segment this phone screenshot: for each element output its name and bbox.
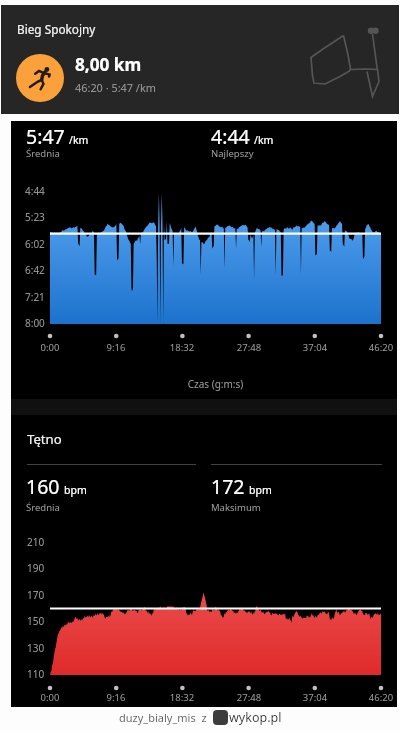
staticText: 18:32 [158,691,206,704]
staticText: /km [69,133,89,147]
staticText: Bieg Spokojny [17,21,96,37]
staticText: 37:04 [291,341,339,354]
staticText: 27:48 [225,341,273,354]
staticText: 170 [27,588,45,602]
staticText: bpm [249,483,272,497]
staticText: 7:21 [25,290,45,304]
staticText: 210 [27,535,45,549]
staticText: 4:44 [25,184,45,198]
staticText: 0:00 [26,341,74,354]
staticText: Tętno [27,430,62,448]
staticText: 46:20 [357,691,400,704]
staticText: 46:20 · 5:47 /km [75,80,156,95]
staticText: 190 [27,561,45,575]
staticText: 110 [27,667,45,681]
staticText: 46:20 [357,341,400,354]
staticText: 0:00 [26,691,74,704]
button[interactable]: Bieg Spokojny [1,5,399,114]
staticText: 172 [211,473,245,500]
staticText: 5:47 [26,123,65,150]
staticText: wykop.pl [229,709,282,726]
staticText: 27:48 [225,691,273,704]
staticText: 130 [27,641,45,655]
staticText: 6:42 [25,263,45,277]
staticText: Czas (g:m:s) [50,377,381,391]
staticText: 37:04 [291,691,339,704]
staticText: /km [254,133,274,147]
staticText: 5:23 [25,210,45,224]
staticText: Średnia [26,147,60,160]
staticText: bpm [64,483,87,497]
staticText: 9:16 [92,691,140,704]
staticText: 8,00 km [75,53,142,76]
other: Route map [307,21,393,103]
staticText: duzy_bialy_mis z [119,710,210,725]
staticText: 4:44 [211,123,250,150]
staticText: 150 [27,614,45,628]
staticText: Maksimum [211,501,261,514]
staticText: 6:02 [25,237,45,251]
staticText: 160 [26,473,60,500]
staticText: Średnia [26,501,60,514]
staticText: 8:00 [25,316,45,330]
staticText: 18:32 [158,341,206,354]
staticText: Najlepszy [211,147,254,160]
staticText: 9:16 [92,341,140,354]
